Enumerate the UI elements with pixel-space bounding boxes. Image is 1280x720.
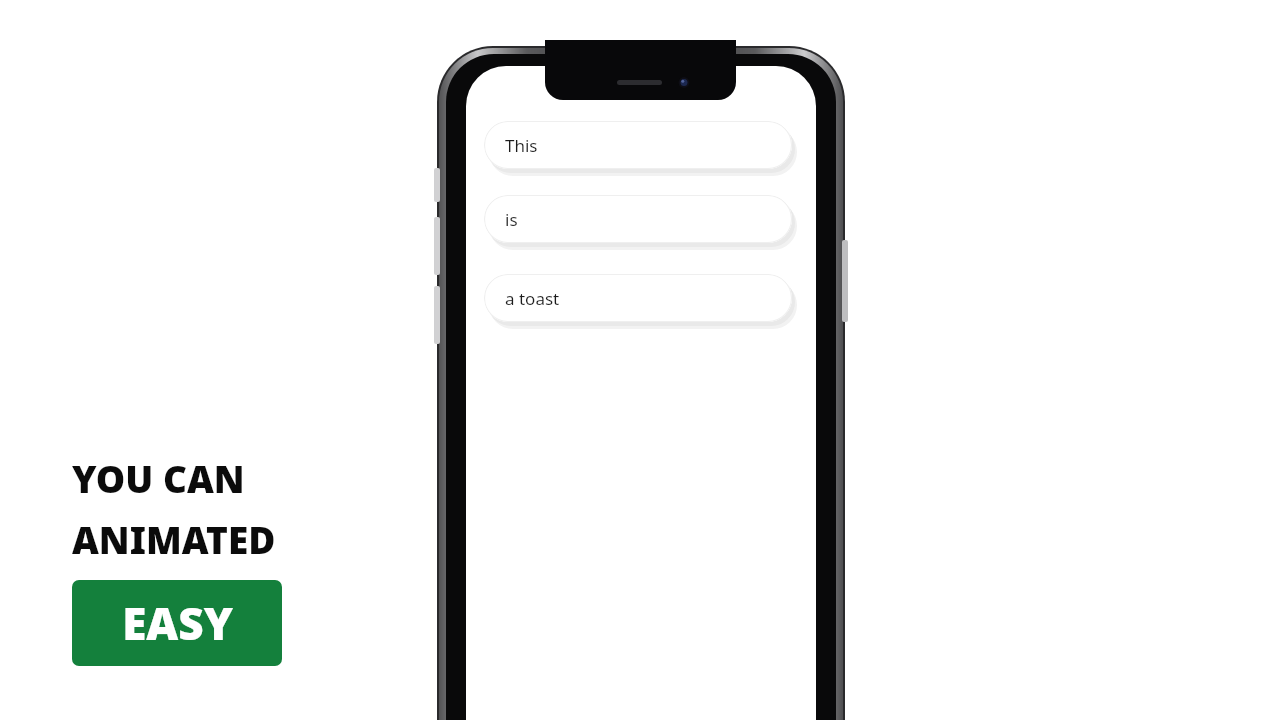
staticText: This bbox=[505, 134, 538, 157]
staticText: is bbox=[505, 208, 518, 231]
button[interactable]: is bbox=[484, 195, 792, 243]
button[interactable]: a toast bbox=[484, 274, 792, 322]
staticText: EASY bbox=[122, 593, 233, 653]
staticText: a toast bbox=[505, 287, 560, 310]
button[interactable]: EASY bbox=[72, 580, 282, 666]
staticText: ANIMATED bbox=[72, 514, 276, 564]
staticText: YOU CAN bbox=[72, 453, 245, 503]
button[interactable]: This bbox=[484, 121, 792, 169]
